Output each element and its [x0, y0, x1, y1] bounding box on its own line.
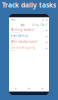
- staticText: Write weekly report: [10, 40, 37, 43]
- staticText: Today, Mar 4: [31, 23, 47, 27]
- button[interactable]: Tab: [9, 87, 22, 89]
- button[interactable]: Morning workout: [10, 27, 47, 33]
- staticText: Track daily tasks: [2, 1, 56, 9]
- button[interactable]: Grocery shopping: [10, 45, 47, 51]
- staticText: 7:00 – 8:00 AM: [10, 31, 19, 33]
- button[interactable]: Add: [46, 19, 47, 21]
- staticText: Team standup: [10, 34, 28, 37]
- button[interactable]: Search: [42, 19, 44, 21]
- staticText: 9:30 AM: [10, 37, 15, 39]
- button[interactable]: Tab: [36, 87, 49, 89]
- button[interactable]: Write weekly report: [10, 39, 47, 45]
- button[interactable]: Tab: [22, 87, 36, 89]
- button[interactable]: Team standup: [10, 33, 47, 39]
- staticText: Grocery shopping: [10, 46, 35, 49]
- button[interactable]: Tasks: [10, 18, 15, 22]
- staticText: 6:00 PM: [10, 49, 15, 51]
- staticText: Morning workout: [10, 28, 34, 31]
- staticText: 1:00 PM: [10, 43, 15, 45]
- staticText: Tasks: [10, 18, 15, 22]
